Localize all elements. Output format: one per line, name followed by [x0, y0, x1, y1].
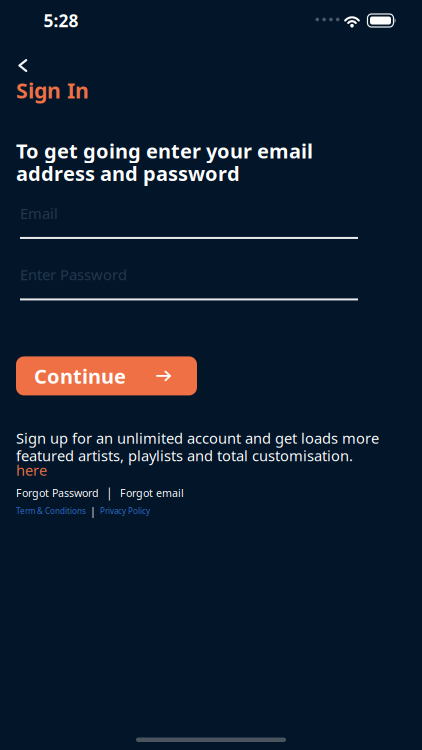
button[interactable]: Password [0, 265, 358, 300]
staticText: Continue [34, 363, 126, 389]
staticText: Sign up for an unlimited account and get… [16, 428, 379, 465]
staticText: | [106, 485, 113, 501]
staticText: 5:28 [43, 9, 78, 32]
button[interactable]: Back [0, 59, 28, 72]
staticText: here [16, 460, 47, 480]
button[interactable]: Forgot email [120, 486, 184, 500]
button[interactable]: Continue [16, 356, 197, 395]
button[interactable]: Forgot Password [16, 486, 99, 500]
button[interactable]: Term & Conditions [16, 506, 86, 516]
staticText: Sign In [16, 76, 89, 104]
button[interactable]: Email [0, 203, 358, 239]
button[interactable]: Privacy Policy [100, 506, 150, 516]
staticText: Enter Password [20, 265, 127, 284]
staticText: Forgot Password [16, 486, 99, 500]
button[interactable]: here [0, 460, 47, 480]
staticText: Forgot email [120, 486, 184, 500]
staticText: To get going enter your email address an… [16, 137, 313, 186]
staticText: Term & Conditions [16, 506, 86, 516]
staticText: | [90, 504, 96, 518]
staticText: Email [20, 203, 58, 223]
staticText: Privacy Policy [100, 506, 150, 516]
